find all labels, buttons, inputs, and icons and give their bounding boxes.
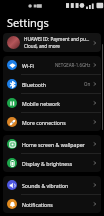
button[interactable]: Mobile network: [3, 94, 101, 112]
button[interactable]: Notifications: [3, 195, 101, 213]
button[interactable]: Bluetooth: [3, 75, 101, 93]
staticText: Notifications: [22, 201, 53, 208]
staticText: Home screen & wallpaper: [22, 141, 85, 148]
staticText: Sounds & vibration: [22, 182, 69, 189]
staticText: NETGEAR-1.6GHz: [55, 62, 91, 68]
button[interactable]: Wi-Fi: [3, 56, 101, 74]
button[interactable]: Display & brightness: [3, 154, 101, 172]
button[interactable]: Home screen & wallpaper: [3, 135, 101, 153]
staticText: Display & brightness: [22, 160, 73, 167]
staticText: Settings: [7, 15, 49, 30]
button[interactable]: Sounds & vibration: [3, 176, 101, 194]
staticText: Mobile network: [22, 100, 61, 107]
staticText: Wi-Fi: [22, 62, 34, 69]
staticText: HUAWEI ID: Payment and purchases,: [24, 36, 91, 42]
staticText: Cloud, and more: [24, 43, 60, 49]
staticText: More connections: [22, 119, 66, 126]
staticText: On: [84, 81, 91, 87]
button[interactable]: HUAWEI ID: Payment and purchases,: [3, 33, 101, 52]
staticText: Bluetooth: [22, 81, 47, 88]
button[interactable]: More connections: [3, 113, 101, 131]
